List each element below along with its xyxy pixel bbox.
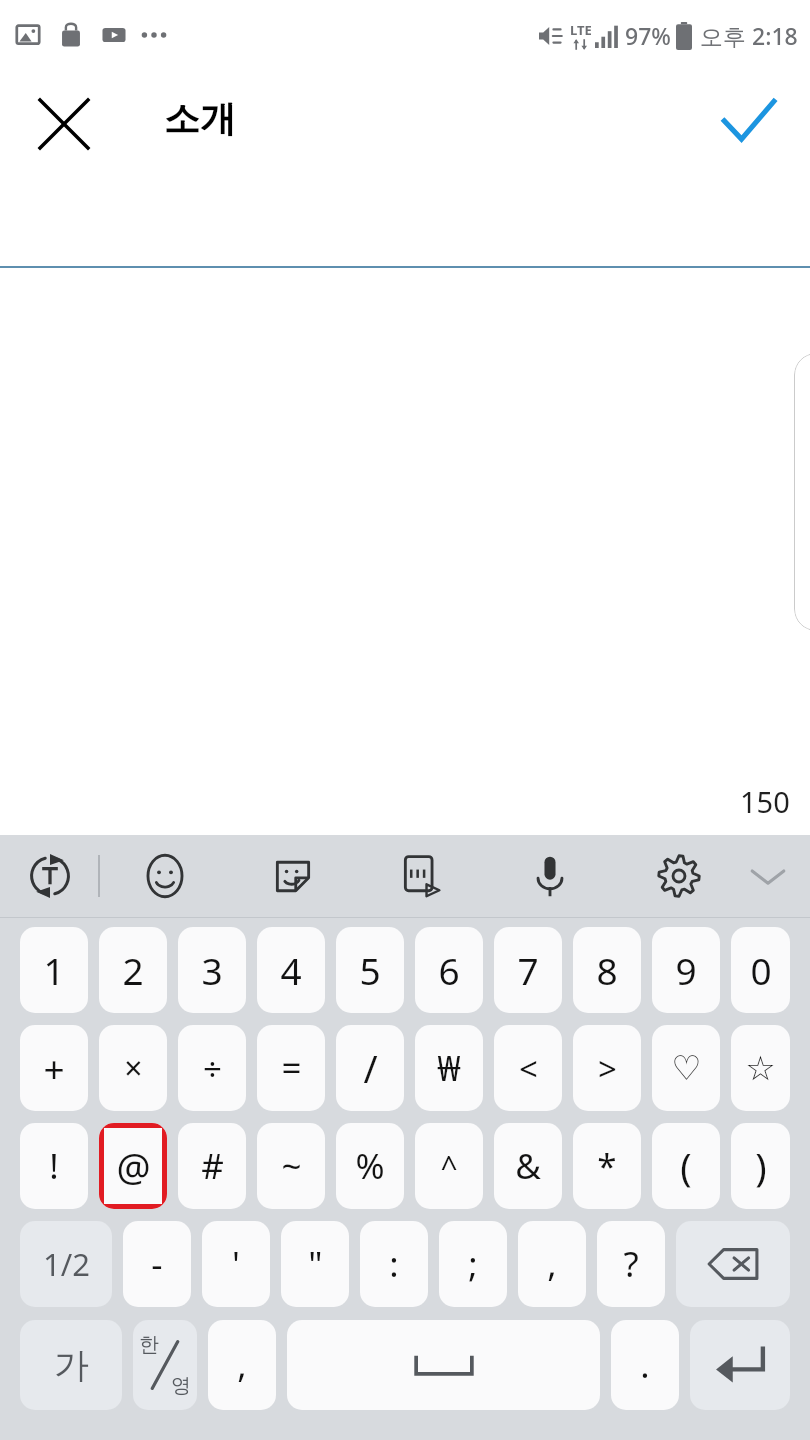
button[interactable]: ^ bbox=[415, 1123, 483, 1209]
button[interactable]: 8 bbox=[573, 927, 641, 1013]
button[interactable]: * bbox=[573, 1123, 641, 1209]
staticText: ) bbox=[755, 1140, 767, 1192]
staticText: @ bbox=[116, 1140, 151, 1192]
staticText: ☆ bbox=[745, 1048, 776, 1088]
staticText: 3 bbox=[201, 945, 223, 995]
button[interactable]: 6 bbox=[415, 927, 483, 1013]
staticText: 1/2 bbox=[43, 1243, 90, 1285]
button[interactable]: < bbox=[494, 1025, 562, 1111]
button[interactable]: > bbox=[573, 1025, 641, 1111]
button[interactable]: 9 bbox=[652, 927, 720, 1013]
staticText: 97% bbox=[625, 20, 671, 51]
button[interactable]: 3 bbox=[178, 927, 246, 1013]
button[interactable]: Enter bbox=[690, 1320, 790, 1410]
staticText: , bbox=[237, 1341, 247, 1389]
staticText: 0 bbox=[750, 945, 772, 995]
button[interactable]: ( bbox=[652, 1123, 720, 1209]
button[interactable]: 2 bbox=[99, 927, 167, 1013]
staticText: " bbox=[308, 1240, 323, 1288]
staticText: 1 bbox=[43, 945, 65, 995]
button[interactable]: - bbox=[123, 1221, 191, 1307]
button[interactable]: 0 bbox=[731, 927, 790, 1013]
staticText: 8 bbox=[596, 945, 618, 995]
button[interactable]: Emoji bbox=[131, 842, 199, 910]
staticText: 9 bbox=[675, 945, 697, 995]
button[interactable]: + bbox=[20, 1025, 88, 1111]
staticText: 가 bbox=[54, 1343, 89, 1387]
button[interactable]: , bbox=[518, 1221, 586, 1307]
button[interactable]: 4 bbox=[257, 927, 325, 1013]
button[interactable]: Hide keyboard bbox=[736, 844, 800, 908]
button[interactable]: Settings bbox=[645, 842, 713, 910]
button[interactable]: ~ bbox=[257, 1123, 325, 1209]
staticText: × bbox=[124, 1046, 143, 1090]
staticText: ? bbox=[623, 1240, 639, 1288]
button[interactable]: ; bbox=[439, 1221, 507, 1307]
staticText: ' bbox=[232, 1240, 240, 1288]
staticText: ! bbox=[49, 1142, 59, 1190]
staticText: 150 bbox=[740, 782, 790, 821]
staticText: # bbox=[201, 1142, 224, 1190]
button[interactable]: ! bbox=[20, 1123, 88, 1209]
button[interactable]: % bbox=[336, 1123, 404, 1209]
button[interactable]: Done bbox=[702, 78, 794, 170]
button[interactable]: Sticker bbox=[259, 842, 327, 910]
button[interactable]: Voice input bbox=[516, 842, 584, 910]
button[interactable]: Korean English toggle bbox=[133, 1320, 197, 1410]
staticText: , bbox=[547, 1240, 557, 1288]
staticText: 6 bbox=[438, 945, 460, 995]
button[interactable]: 1 bbox=[20, 927, 88, 1013]
staticText: * bbox=[597, 1142, 617, 1190]
staticText: 4 bbox=[280, 945, 302, 995]
staticText: - bbox=[151, 1240, 163, 1288]
staticText: + bbox=[43, 1043, 65, 1093]
staticText: LTE bbox=[570, 21, 592, 39]
button[interactable]: ' bbox=[202, 1221, 270, 1307]
button[interactable]: = bbox=[257, 1025, 325, 1111]
button[interactable]: 7 bbox=[494, 927, 562, 1013]
staticText: < bbox=[519, 1046, 538, 1091]
staticText: ; bbox=[468, 1240, 478, 1288]
staticText: 7 bbox=[517, 945, 539, 995]
button[interactable]: / bbox=[336, 1025, 404, 1111]
staticText: 5 bbox=[359, 945, 381, 995]
staticText: ~ bbox=[281, 1142, 302, 1190]
button[interactable]: " bbox=[281, 1221, 349, 1307]
button[interactable]: Close bbox=[18, 78, 110, 170]
button[interactable]: × bbox=[99, 1025, 167, 1111]
staticText: % bbox=[355, 1142, 385, 1190]
button[interactable]: ? bbox=[597, 1221, 665, 1307]
button[interactable]: ÷ bbox=[178, 1025, 246, 1111]
button[interactable]: ☆ bbox=[731, 1025, 790, 1111]
staticText: 오후 2:18 bbox=[700, 20, 798, 51]
staticText: ♡ bbox=[671, 1048, 702, 1088]
staticText: & bbox=[515, 1142, 541, 1190]
staticText: 소개 bbox=[164, 96, 236, 141]
staticText: ( bbox=[680, 1140, 692, 1192]
button[interactable]: ♡ bbox=[652, 1025, 720, 1111]
button[interactable]: # bbox=[178, 1123, 246, 1209]
button[interactable]: , bbox=[208, 1320, 276, 1410]
button[interactable]: Space bbox=[287, 1320, 600, 1410]
button[interactable]: Translate bbox=[16, 842, 84, 910]
staticText: . bbox=[640, 1341, 650, 1389]
staticText: ₩ bbox=[437, 1044, 461, 1092]
staticText: : bbox=[389, 1240, 399, 1288]
button[interactable]: & bbox=[494, 1123, 562, 1209]
button[interactable]: ) bbox=[731, 1123, 790, 1209]
button[interactable]: @ bbox=[99, 1123, 167, 1209]
button[interactable]: Backspace bbox=[676, 1221, 790, 1307]
button[interactable]: 5 bbox=[336, 927, 404, 1013]
staticText: > bbox=[598, 1046, 617, 1091]
staticText: 한 bbox=[139, 1332, 159, 1357]
staticText: / bbox=[363, 1042, 378, 1094]
button[interactable]: 가 bbox=[20, 1320, 122, 1410]
button[interactable]: . bbox=[611, 1320, 679, 1410]
button[interactable]: ₩ bbox=[415, 1025, 483, 1111]
staticText: 2 bbox=[122, 945, 144, 995]
staticText: = bbox=[281, 1044, 302, 1092]
button[interactable]: : bbox=[360, 1221, 428, 1307]
staticText: ÷ bbox=[203, 1046, 222, 1091]
button[interactable]: 1/2 bbox=[20, 1221, 112, 1307]
button[interactable]: GIF bbox=[387, 842, 455, 910]
